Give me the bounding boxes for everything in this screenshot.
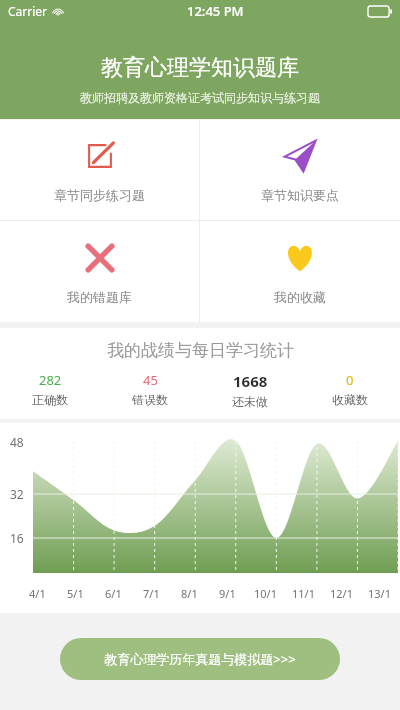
staticText: 还未做 — [232, 394, 268, 409]
staticText: 正确数 — [32, 392, 68, 407]
staticText: 我的收藏 — [274, 289, 326, 305]
staticText: 我的错题库 — [67, 289, 132, 305]
staticText: 9/1 — [219, 586, 236, 601]
button[interactable]: 章节知识要点 — [200, 120, 400, 220]
staticText: 章节同步练习题 — [54, 187, 145, 203]
staticText: 12/1 — [330, 586, 353, 601]
staticText: 12:45 PM — [187, 2, 244, 20]
staticText: 16 — [10, 530, 24, 546]
staticText: 教育心理学历年真题与模拟题>>> — [104, 650, 296, 668]
button[interactable]: 教育心理学历年真题与模拟题>>> — [60, 638, 340, 680]
staticText: 错误数 — [132, 392, 168, 407]
staticText: 11/1 — [292, 586, 315, 601]
button[interactable]: 我的错题库 — [0, 221, 199, 322]
staticText: 教师招聘及教师资格证考试同步知识与练习题 — [80, 90, 320, 105]
staticText: 收藏数 — [332, 392, 368, 407]
button[interactable]: 45 — [100, 371, 200, 407]
staticText: 0 — [346, 371, 354, 389]
staticText: 4/1 — [29, 586, 46, 601]
staticText: 8/1 — [181, 586, 198, 601]
staticText: 10/1 — [254, 586, 277, 601]
button[interactable]: 1668 — [200, 371, 300, 409]
staticText: 45 — [143, 371, 158, 389]
button[interactable]: 我的收藏 — [200, 221, 400, 322]
button[interactable]: 章节同步练习题 — [0, 120, 199, 220]
staticText: 章节知识要点 — [261, 187, 339, 203]
staticText: 5/1 — [67, 586, 84, 601]
staticText: 7/1 — [143, 586, 160, 601]
staticText: 6/1 — [105, 586, 122, 601]
staticText: 32 — [10, 486, 24, 502]
button[interactable]: 282 — [0, 371, 100, 407]
staticText: 13/1 — [368, 586, 391, 601]
staticText: Carrier — [8, 3, 48, 19]
staticText: 教育心理学知识题库 — [101, 54, 299, 82]
staticText: 我的战绩与每日学习统计 — [107, 340, 294, 361]
staticText: 1668 — [233, 371, 268, 391]
staticText: 48 — [10, 434, 24, 450]
staticText: 282 — [39, 371, 62, 389]
button[interactable]: 0 — [300, 371, 400, 407]
